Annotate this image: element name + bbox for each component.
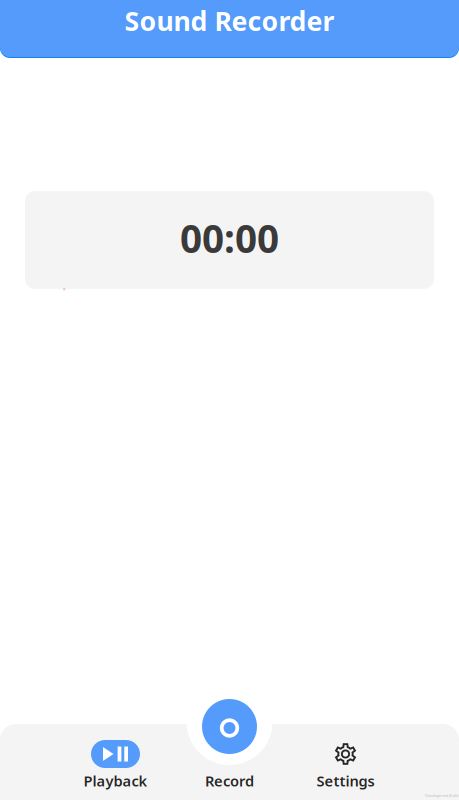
staticText: Development Build xyxy=(425,793,458,798)
button[interactable]: Record xyxy=(202,699,257,754)
staticText: 00:00 xyxy=(180,212,279,264)
button[interactable]: Playback xyxy=(55,724,175,790)
button[interactable]: Settings xyxy=(285,724,405,790)
staticText: Sound Recorder xyxy=(124,3,334,38)
button[interactable]: Record xyxy=(176,724,282,790)
staticText: Playback xyxy=(83,771,147,790)
staticText: Settings xyxy=(316,771,374,790)
staticText: Record xyxy=(205,771,254,790)
